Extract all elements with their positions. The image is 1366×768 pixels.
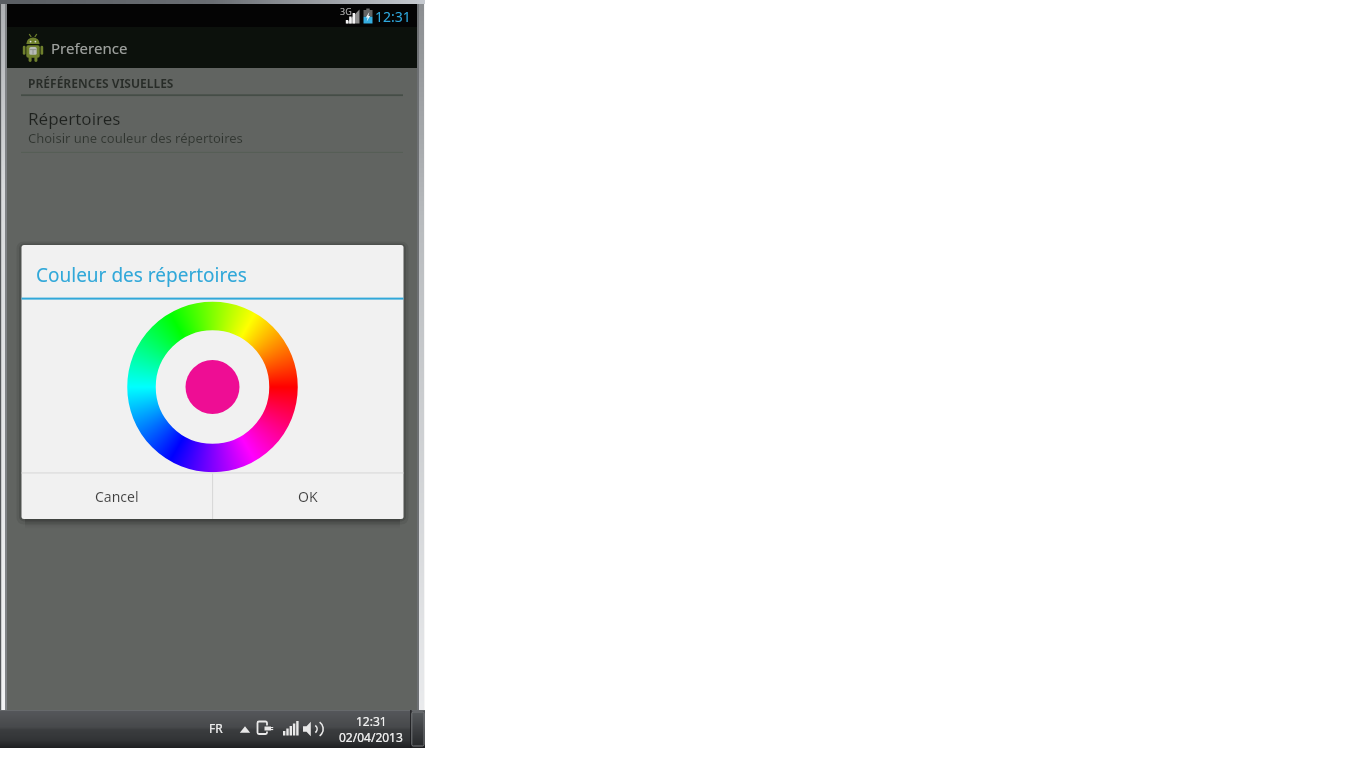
staticText: 12:31 — [356, 713, 387, 728]
staticText: 3G — [340, 5, 352, 17]
staticText: PRÉFÉRENCES VISUELLES — [28, 75, 174, 91]
staticText: FR — [209, 720, 223, 736]
staticText: OK — [298, 487, 318, 506]
staticText: 12:31 — [375, 7, 411, 24]
staticText: Couleur des répertoires — [36, 262, 247, 288]
button[interactable]: Preference — [51, 36, 251, 60]
staticText: Preference — [51, 38, 128, 58]
staticText: Cancel — [95, 487, 139, 506]
button[interactable]: Cancel — [22, 474, 212, 519]
button[interactable]: OK — [213, 474, 403, 519]
staticText: Choisir une couleur des répertoires — [28, 129, 243, 147]
button[interactable]: Répertoires — [7, 97, 417, 152]
button[interactable]: 12:31 — [332, 713, 410, 728]
staticText: Répertoires — [28, 107, 121, 130]
button[interactable]: FR — [202, 719, 230, 736]
staticText: 02/04/2013 — [339, 729, 403, 744]
